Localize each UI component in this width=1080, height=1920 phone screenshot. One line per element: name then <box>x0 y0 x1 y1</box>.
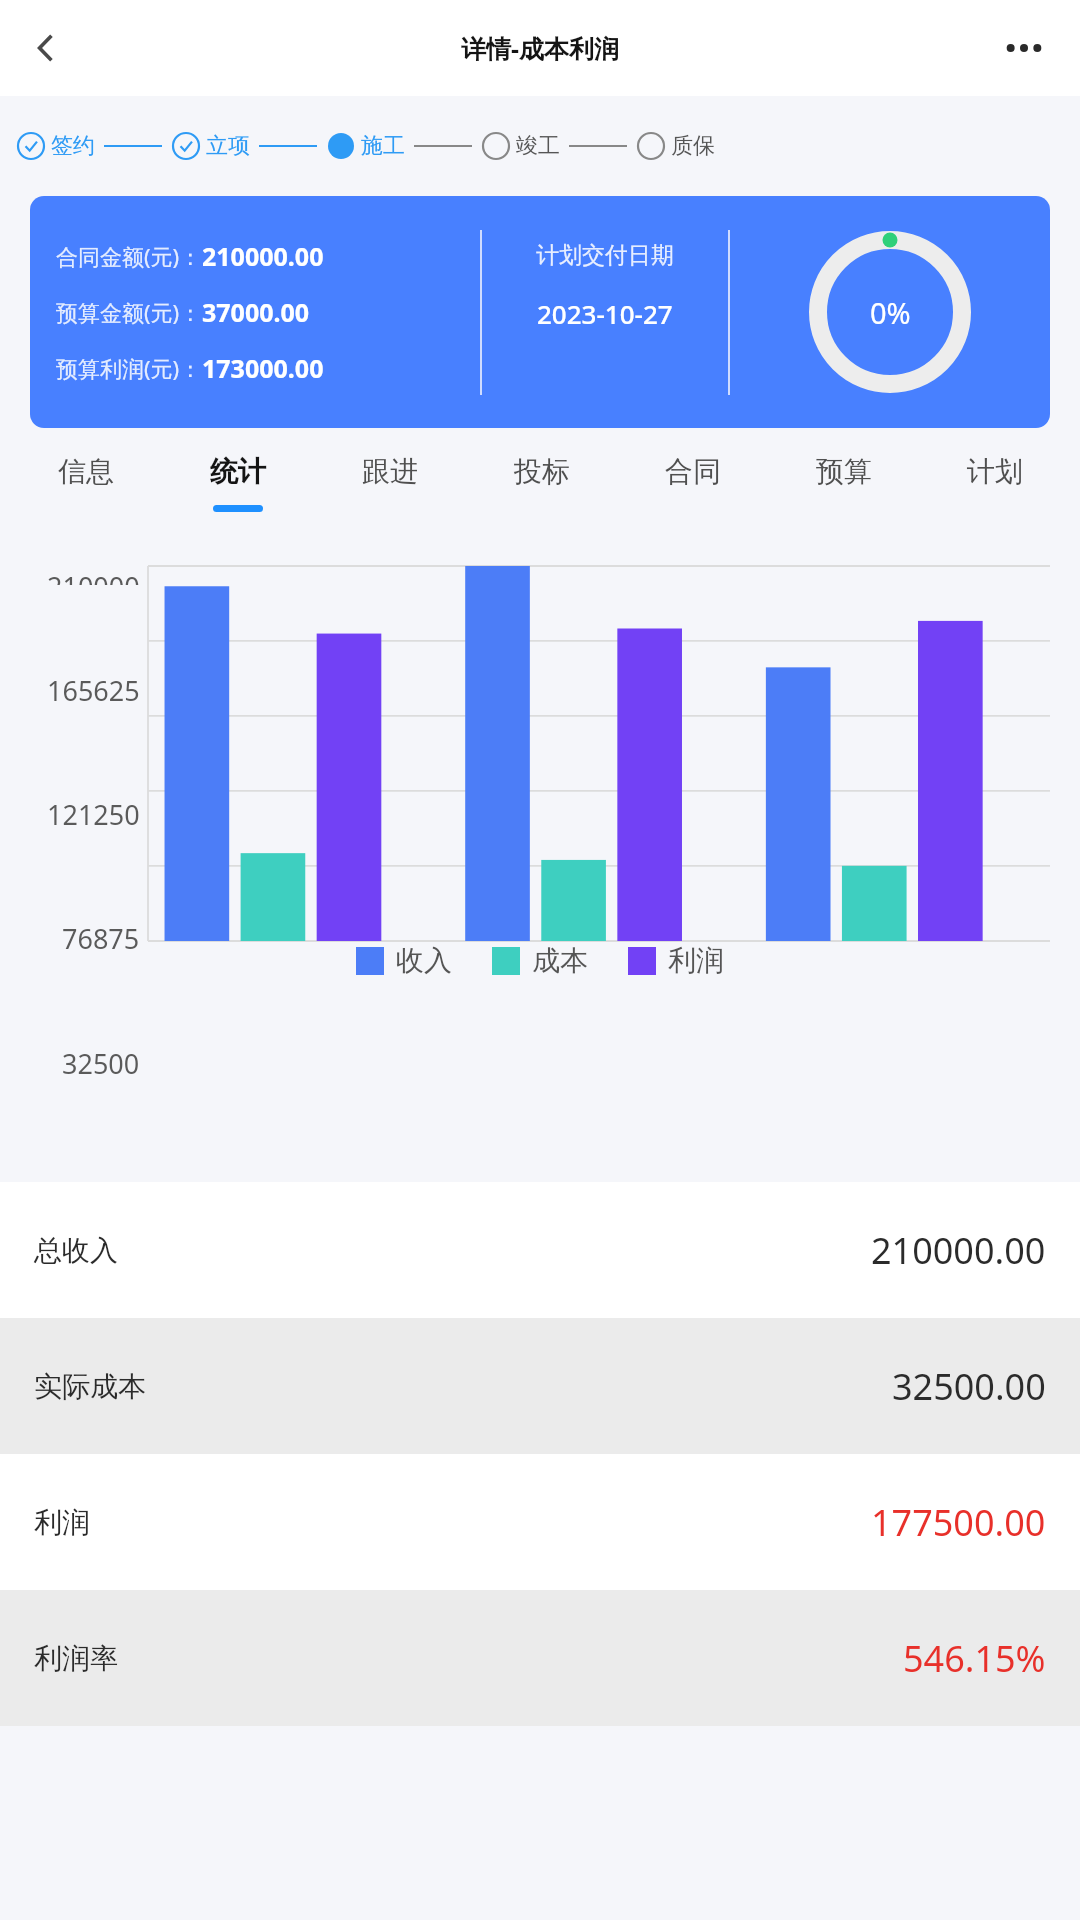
button[interactable]: 合同 <box>617 428 768 546</box>
staticText: 跟进 <box>362 454 418 489</box>
staticText: 利润 <box>668 943 724 978</box>
staticText: 施工 <box>361 132 405 160</box>
button[interactable]: 施工 <box>326 131 405 161</box>
staticText: 32500.00 <box>892 1362 1046 1411</box>
staticText: 信息 <box>58 454 114 489</box>
staticText: 立项 <box>206 132 250 160</box>
staticText: 预算金额(元)： <box>56 297 202 327</box>
button[interactable]: Back <box>16 18 76 78</box>
staticText: 210000.00 <box>202 239 324 273</box>
staticText: 实际成本 <box>34 1369 146 1404</box>
staticText: 合同金额(元)： <box>56 241 202 271</box>
button[interactable]: 跟进 <box>314 428 466 546</box>
staticText: 173000.00 <box>202 351 324 385</box>
staticText: 利润 <box>34 1505 90 1540</box>
button[interactable]: 签约 <box>16 131 95 161</box>
button[interactable]: 利润率 <box>0 1590 1080 1726</box>
button[interactable]: 投标 <box>466 428 617 546</box>
staticText: 546.15% <box>903 1634 1046 1683</box>
button[interactable]: 信息 <box>10 428 162 546</box>
button[interactable]: 质保 <box>636 131 715 161</box>
staticText: 详情-成本利润 <box>461 31 620 65</box>
staticText: 177500.00 <box>871 1498 1046 1547</box>
staticText: 210000.00 <box>871 1226 1046 1275</box>
staticText: 总收入 <box>34 1233 118 1268</box>
staticText: 竣工 <box>516 132 560 160</box>
staticText: 质保 <box>671 132 715 160</box>
staticText: 121250 <box>47 796 140 833</box>
button[interactable]: 利润 <box>628 943 724 978</box>
staticText: 成本 <box>532 943 588 978</box>
staticText: 预算利润(元)： <box>56 353 202 383</box>
staticText: 37000.00 <box>202 295 310 329</box>
staticText: 0% <box>870 293 911 332</box>
button[interactable]: 合同金额(元)： <box>30 196 1050 428</box>
staticText: 投标 <box>514 454 570 489</box>
staticText: 签约 <box>51 132 95 160</box>
staticText: 计划交付日期 <box>536 241 674 270</box>
button[interactable]: 预算 <box>768 428 919 546</box>
button[interactable]: 总收入 <box>0 1182 1080 1318</box>
staticText: 165625 <box>47 672 140 709</box>
button[interactable]: 立项 <box>171 131 250 161</box>
staticText: 利润率 <box>34 1641 118 1676</box>
staticText: 统计 <box>210 454 266 489</box>
staticText: 收入 <box>396 943 452 978</box>
staticText: 合同 <box>665 454 721 489</box>
staticText: 32500 <box>62 1045 140 1082</box>
button[interactable]: 统计 <box>162 428 314 546</box>
staticText: 2023-10-27 <box>537 296 673 331</box>
button[interactable]: 成本 <box>492 943 588 978</box>
staticText: 210000 <box>47 568 140 585</box>
button[interactable]: 实际成本 <box>0 1318 1080 1454</box>
staticText: 预算 <box>816 454 872 489</box>
staticText: 计划 <box>967 454 1023 489</box>
button[interactable]: 收入 <box>356 943 452 978</box>
button[interactable]: 利润 <box>0 1454 1080 1590</box>
button[interactable]: 计划 <box>919 428 1070 546</box>
staticText: 76875 <box>62 920 140 957</box>
button[interactable]: 竣工 <box>481 131 560 161</box>
button[interactable]: More options <box>994 18 1054 78</box>
